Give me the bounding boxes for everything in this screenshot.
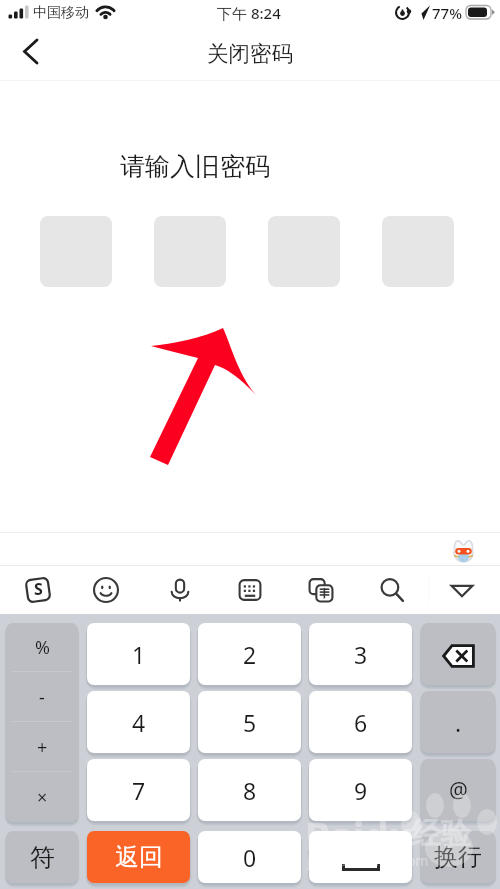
staticText: jingyan.baidu.com (307, 851, 429, 870)
button[interactable]: . (421, 691, 495, 753)
button[interactable]: 6 (309, 691, 412, 753)
button[interactable]: 4 (87, 691, 190, 753)
staticText: 4 (132, 707, 146, 738)
staticText: 7 (132, 775, 146, 806)
button[interactable]: Emoji (82, 566, 130, 614)
staticText: 2 (243, 639, 257, 670)
button[interactable]: Clipboard (297, 566, 345, 614)
staticText: . (455, 707, 462, 738)
staticText: Baidu (305, 809, 414, 861)
button[interactable]: 2 (198, 623, 301, 685)
button[interactable]: @ (421, 759, 495, 821)
button[interactable]: Hide keyboard (438, 566, 486, 614)
staticText: 1 (132, 639, 146, 670)
staticText: 经验 (411, 815, 471, 853)
button[interactable]: 换行 (421, 831, 495, 883)
staticText: 符 (30, 842, 55, 873)
button[interactable]: 3 (309, 623, 412, 685)
button[interactable]: Sogou input (14, 566, 62, 614)
button[interactable]: - (6, 672, 78, 722)
button[interactable]: Delete (421, 623, 495, 685)
staticText: × (37, 785, 48, 810)
staticText: 77% (432, 3, 462, 23)
staticText: + (37, 735, 48, 760)
staticText: 中国移动 (33, 4, 89, 22)
button[interactable]: % (6, 623, 78, 672)
staticText: 换行 (434, 842, 482, 872)
staticText: 0 (243, 842, 257, 873)
button[interactable]: + (6, 722, 78, 772)
staticText: - (39, 685, 45, 710)
button[interactable]: 8 (198, 759, 301, 821)
staticText: 6 (354, 707, 368, 738)
button[interactable]: Keypad (226, 566, 274, 614)
staticText: Baidu (305, 809, 414, 861)
button[interactable]: 1 (87, 623, 190, 685)
staticText: 5 (243, 707, 257, 738)
button[interactable]: Back (0, 29, 52, 81)
button[interactable]: 5 (198, 691, 301, 753)
button[interactable]: Space (309, 831, 412, 883)
staticText: 9 (354, 775, 368, 806)
button[interactable]: 符 (6, 831, 78, 883)
button[interactable]: Voice input (156, 566, 204, 614)
staticText: 返回 (115, 842, 163, 872)
button[interactable]: 0 (198, 831, 301, 883)
staticText: @ (449, 776, 468, 805)
button[interactable]: 返回 (87, 831, 190, 883)
button[interactable]: × (6, 772, 78, 822)
staticText: 请输入旧密码 (120, 151, 270, 182)
staticText: 8 (243, 775, 257, 806)
staticText: 关闭密码 (207, 40, 293, 67)
staticText: % (35, 635, 50, 660)
button[interactable]: 7 (87, 759, 190, 821)
staticText: 3 (354, 639, 368, 670)
button[interactable]: 9 (309, 759, 412, 821)
staticText: S (34, 578, 43, 600)
button[interactable]: Search (368, 566, 416, 614)
staticText: 下午 8:24 (217, 3, 281, 23)
